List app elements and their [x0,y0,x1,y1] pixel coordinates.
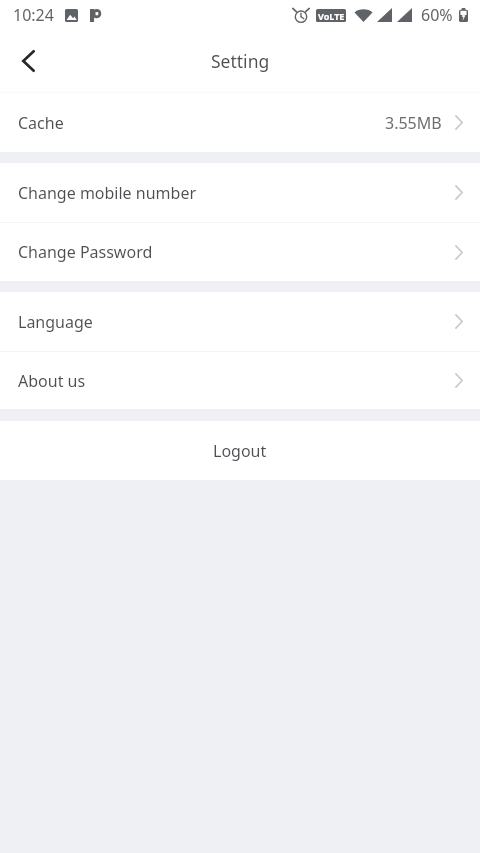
staticText: Change Password [18,241,153,263]
staticText: 60% [421,4,453,26]
staticText: VoLTE [318,10,345,22]
staticText: Language [18,311,93,333]
button[interactable]: Back [12,45,44,77]
staticText: 10:24 [13,4,54,26]
staticText: About us [18,370,86,392]
button[interactable]: Logout [0,421,480,480]
staticText: Change mobile number [18,182,197,204]
staticText: Cache [18,112,64,134]
staticText: Setting [211,49,270,73]
button[interactable]: About us [0,352,480,409]
button[interactable]: Language [0,292,480,351]
staticText: Logout [213,440,267,462]
button[interactable]: Cache [0,93,480,152]
button[interactable]: Change Password [0,223,480,281]
button[interactable]: Change mobile number [0,163,480,222]
staticText: 3.55MB [385,112,442,134]
